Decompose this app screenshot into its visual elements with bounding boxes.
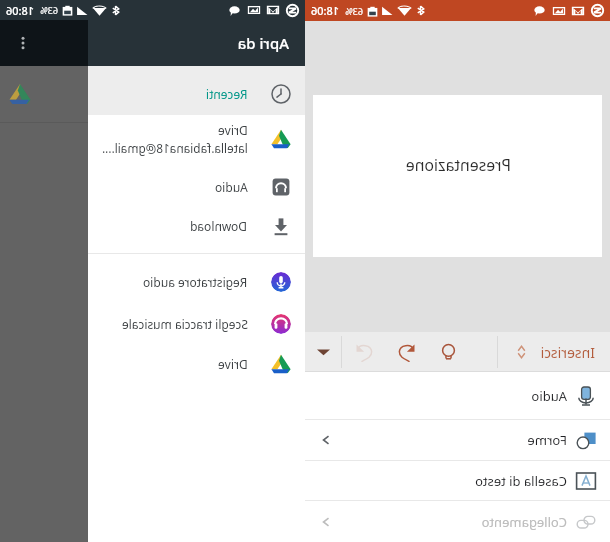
staticText: Drive [218, 356, 248, 372]
staticText: Drive [218, 122, 248, 138]
button[interactable]: More options [0, 20, 88, 66]
staticText: Forme [527, 431, 567, 449]
staticText: Registratore audio [143, 274, 248, 290]
button[interactable]: Annulla [343, 332, 385, 372]
button[interactable]: Scegli traccia musicale [88, 303, 305, 345]
staticText: Casella di testo [475, 472, 567, 490]
staticText: 63% [345, 5, 363, 17]
staticText: 18:06 [310, 3, 339, 18]
button[interactable]: Casella di testo [305, 461, 610, 500]
button[interactable]: Drive [88, 115, 305, 162]
button[interactable]: Recenti [88, 66, 305, 115]
button[interactable]: Forme [305, 420, 610, 460]
staticText: Inserisci [540, 343, 595, 362]
staticText: Audio [531, 387, 567, 405]
staticText: Audio [215, 179, 248, 195]
staticText: Recenti [206, 86, 248, 102]
button[interactable]: Suggerimenti [427, 332, 469, 372]
staticText: Collegamento [481, 513, 567, 531]
button[interactable]: Audio [88, 162, 305, 207]
staticText: Download [190, 218, 248, 234]
staticText: Scegli traccia musicale [122, 316, 248, 332]
button[interactable]: Drive [88, 345, 305, 383]
button[interactable]: Audio [305, 372, 610, 419]
staticText: 18:06 [5, 3, 34, 18]
staticText: Apri da [237, 33, 289, 53]
button[interactable]: Registratore audio [88, 254, 305, 303]
button[interactable]: Ripeti [385, 332, 427, 372]
button[interactable]: Inserisci [510, 332, 607, 372]
button[interactable]: Collegamento [305, 501, 610, 542]
staticText: Presentazione [405, 154, 511, 176]
staticText: latella.fabiana18@gmail.... [102, 140, 248, 156]
button[interactable]: More options [307, 332, 340, 372]
button[interactable]: Download [88, 207, 305, 249]
staticText: 63% [40, 4, 58, 16]
